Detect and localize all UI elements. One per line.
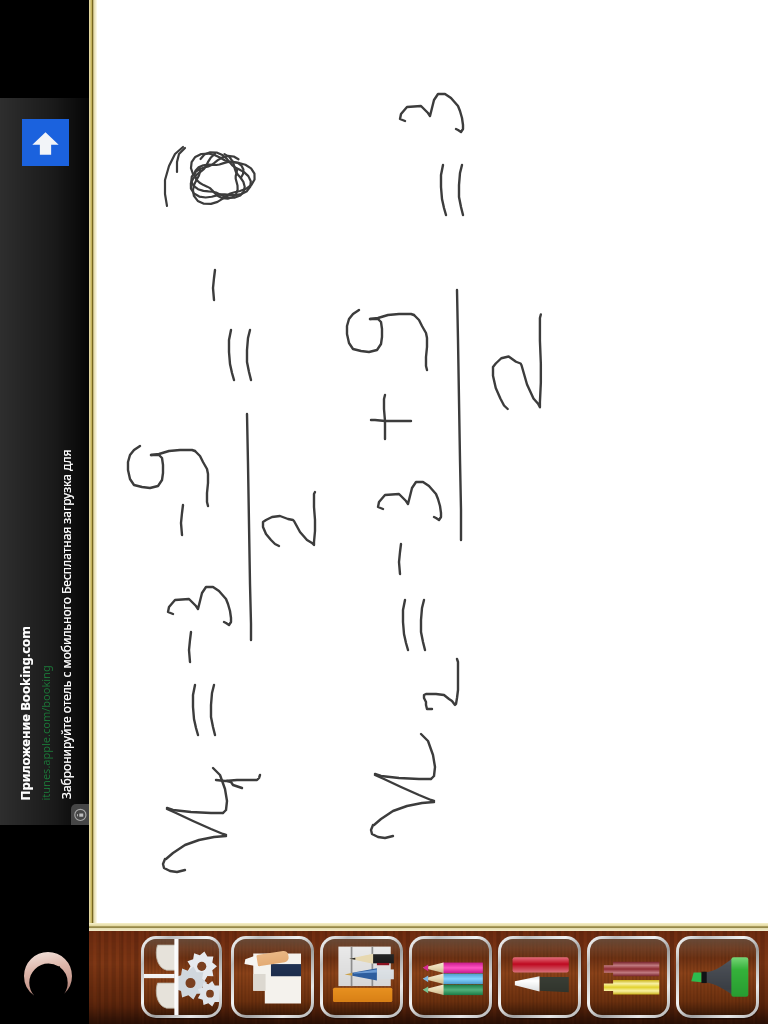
button[interactable]	[498, 936, 581, 1018]
button[interactable]	[320, 936, 403, 1018]
staticText: Забронируйте отель с мобильного Бесплатн…	[58, 449, 74, 799]
staticText: itunes.apple.com/booking	[37, 664, 52, 800]
other: App logo	[24, 952, 72, 1000]
staticText: Приложение Booking.com	[15, 625, 33, 800]
button[interactable]	[587, 936, 670, 1018]
button[interactable]: Ad choices	[71, 804, 89, 825]
button[interactable]	[231, 936, 314, 1018]
button[interactable]: Expand ad	[0, 98, 89, 825]
button[interactable]	[141, 936, 222, 1018]
button[interactable]	[409, 936, 492, 1018]
button[interactable]: Expand ad	[22, 119, 69, 166]
button[interactable]	[676, 936, 759, 1018]
